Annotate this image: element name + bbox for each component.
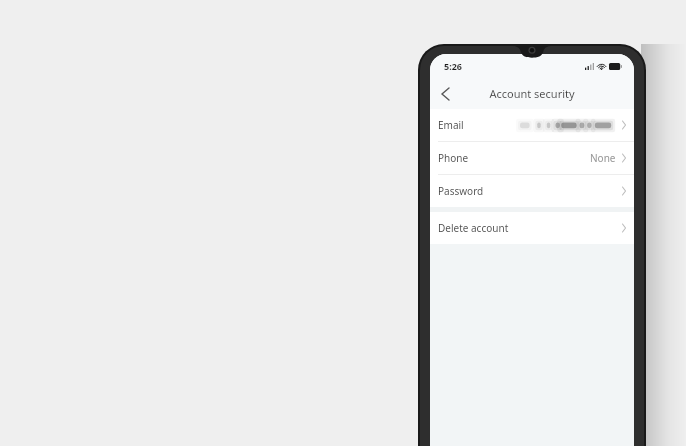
staticText: 5:26 [444,60,462,72]
button[interactable]: Phone [430,142,634,174]
staticText: Email [438,118,464,132]
button[interactable]: Delete account [430,212,634,244]
staticText: Delete account [438,221,509,235]
button[interactable]: Back [430,79,460,109]
button[interactable]: Email [430,109,634,141]
staticText: Password [438,184,484,198]
staticText: Account security [489,86,575,101]
button[interactable]: Password [430,175,634,207]
staticText: None [590,151,616,165]
staticText: Phone [438,151,469,165]
